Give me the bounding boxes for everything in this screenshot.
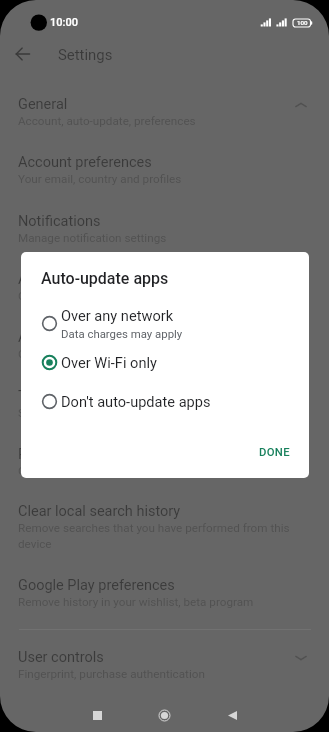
staticText: Notifications xyxy=(18,213,101,230)
staticText: Settings xyxy=(58,46,113,63)
staticText: 10:00 xyxy=(50,16,78,29)
button[interactable]: Parental controls xyxy=(0,443,329,485)
staticText: Over Wi-Fi only xyxy=(61,354,157,371)
button[interactable]: Google Play preferences xyxy=(0,574,329,616)
staticText: Auto-update apps xyxy=(41,269,169,288)
staticText: Off xyxy=(18,464,35,478)
staticText: Clear local search history xyxy=(18,503,181,520)
staticText: Account preferences xyxy=(18,154,152,171)
staticText: Fingerprint, purchase authentication xyxy=(18,667,205,681)
button[interactable]: Auto-play videos xyxy=(0,326,329,368)
button[interactable]: User controls xyxy=(0,646,329,688)
staticText: Over Wi-Fi only xyxy=(18,347,95,361)
button[interactable]: DONE xyxy=(249,439,300,466)
staticText: Manage notification settings xyxy=(18,231,167,245)
staticText: Your email, country and profiles xyxy=(18,172,182,186)
button[interactable]: Clear local search history xyxy=(0,500,329,556)
staticText: Over Wi-Fi only xyxy=(18,289,95,303)
button[interactable]: Over Wi-Fi only xyxy=(21,343,309,381)
staticText: Data charges may apply xyxy=(61,327,183,340)
button[interactable]: Notifications xyxy=(0,210,329,252)
button[interactable]: Theme xyxy=(0,385,329,427)
staticText: System default xyxy=(18,406,96,420)
staticText: Remove history in your wishlist, beta pr… xyxy=(18,595,254,609)
staticText: Account, auto-update, preferences xyxy=(18,114,196,128)
button[interactable]: Back xyxy=(210,693,254,732)
staticText: Remove searches that you have performed … xyxy=(18,521,292,551)
button[interactable]: General xyxy=(0,93,329,135)
staticText: Over any network xyxy=(61,307,174,324)
staticText: General xyxy=(18,96,68,113)
staticText: Auto-play videos xyxy=(18,329,125,346)
button[interactable]: Over any network xyxy=(21,304,309,342)
button[interactable]: Home xyxy=(142,693,186,732)
button[interactable]: Account preferences xyxy=(0,151,329,193)
button[interactable]: Recent apps xyxy=(75,693,119,732)
staticText: Parental controls xyxy=(18,446,128,463)
staticText: 100 xyxy=(297,19,308,26)
button[interactable]: Auto-update apps xyxy=(0,268,329,310)
button[interactable]: Back xyxy=(11,43,35,67)
button[interactable]: Don't auto-update apps xyxy=(21,382,309,420)
staticText: Auto-update apps xyxy=(18,271,133,288)
staticText: Theme xyxy=(18,388,63,405)
staticText: DONE xyxy=(259,446,290,459)
staticText: User controls xyxy=(18,649,104,666)
staticText: Don't auto-update apps xyxy=(61,393,211,410)
staticText: Google Play preferences xyxy=(18,577,175,594)
